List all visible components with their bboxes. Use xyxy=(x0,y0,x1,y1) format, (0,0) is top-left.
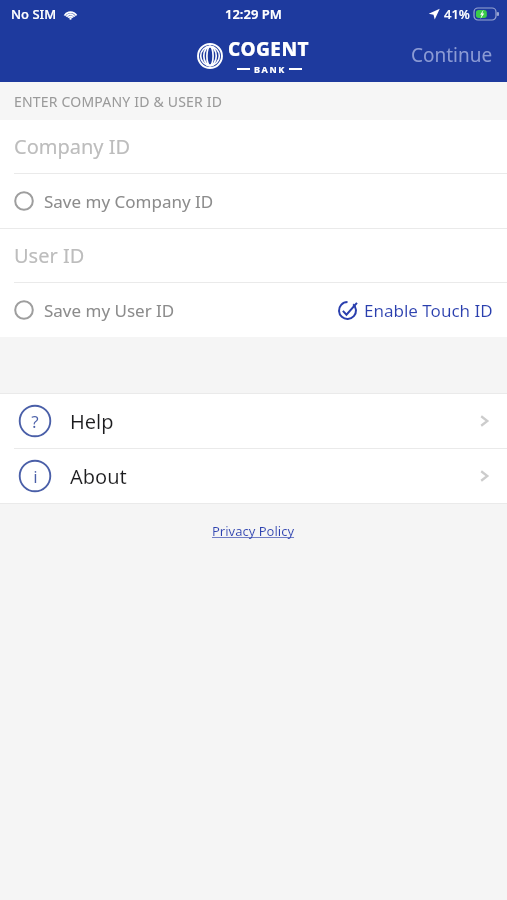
staticText: BANK xyxy=(254,63,286,75)
button[interactable]: Save my User ID xyxy=(0,283,507,337)
staticText: Continue xyxy=(411,42,493,68)
button[interactable]: Enable Touch ID xyxy=(337,293,493,328)
staticText: User ID xyxy=(14,242,85,269)
staticText: Save my Company ID xyxy=(44,190,214,213)
staticText: ? xyxy=(31,410,39,433)
button[interactable]: Save my Company ID xyxy=(0,174,507,228)
button[interactable]: User ID xyxy=(0,229,507,282)
staticText: 41% xyxy=(444,5,470,23)
other: Open xyxy=(477,469,491,483)
staticText: Company ID xyxy=(14,133,131,160)
button[interactable]: Privacy Policy xyxy=(204,518,303,544)
staticText: No SIM xyxy=(11,5,57,23)
staticText: Enable Touch ID xyxy=(364,299,493,322)
staticText: Privacy Policy xyxy=(212,522,295,540)
other: Open xyxy=(477,414,491,428)
staticText: ENTER COMPANY ID & USER ID xyxy=(14,92,223,111)
staticText: Save my User ID xyxy=(44,299,175,322)
staticText: 12:29 PM xyxy=(225,5,282,23)
staticText: About xyxy=(70,463,127,490)
button[interactable]: ? xyxy=(0,394,507,448)
staticText: Help xyxy=(70,408,114,435)
button[interactable]: Continue xyxy=(397,32,507,78)
staticText: COGENT xyxy=(228,36,310,62)
staticText: i xyxy=(33,465,38,488)
button[interactable]: i xyxy=(0,449,507,503)
button[interactable]: Company ID xyxy=(0,120,507,173)
